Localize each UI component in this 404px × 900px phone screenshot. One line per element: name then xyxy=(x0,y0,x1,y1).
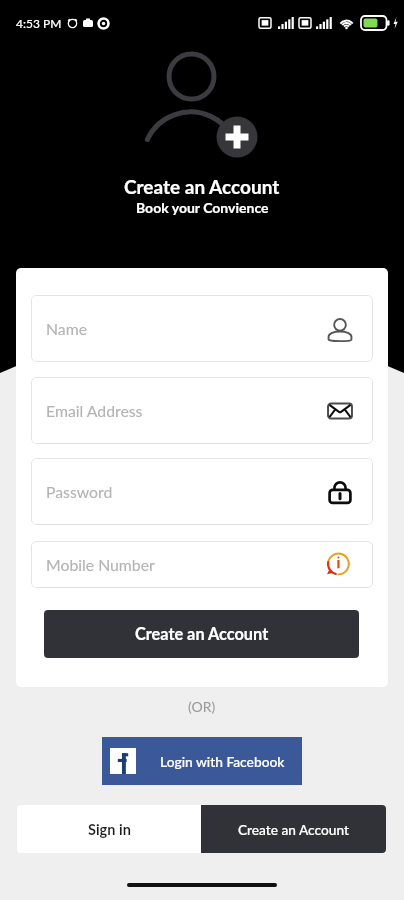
staticText: Create an Account xyxy=(124,175,280,198)
staticText: Email Address xyxy=(46,401,327,420)
staticText: Login with Facebook xyxy=(160,753,285,770)
staticText: Book your Convience xyxy=(136,199,269,216)
staticText: Password xyxy=(46,482,327,501)
staticText: 4:53 PM xyxy=(16,16,62,30)
button[interactable]: Create an Account xyxy=(44,610,359,658)
other: Mobile number info xyxy=(327,552,353,578)
staticText: Create an Account xyxy=(238,821,349,837)
staticText: Name xyxy=(46,319,327,338)
staticText: (OR) xyxy=(188,698,216,715)
other: Password xyxy=(327,479,353,505)
button[interactable]: Password xyxy=(31,458,373,525)
button[interactable]: Mobile Number xyxy=(31,541,373,588)
staticText: Mobile Number xyxy=(46,555,327,574)
staticText: Create an Account xyxy=(135,624,269,644)
button[interactable]: Email Address xyxy=(31,377,373,444)
button[interactable]: Login with Facebook xyxy=(102,737,302,785)
other: Name xyxy=(327,316,353,342)
other: Email address xyxy=(327,398,353,424)
button[interactable]: Sign in xyxy=(17,805,201,853)
staticText: Sign in xyxy=(88,821,131,838)
button[interactable]: Create an Account xyxy=(201,805,386,853)
other: Add account photo xyxy=(0,0,404,900)
button[interactable]: Name xyxy=(31,295,373,362)
